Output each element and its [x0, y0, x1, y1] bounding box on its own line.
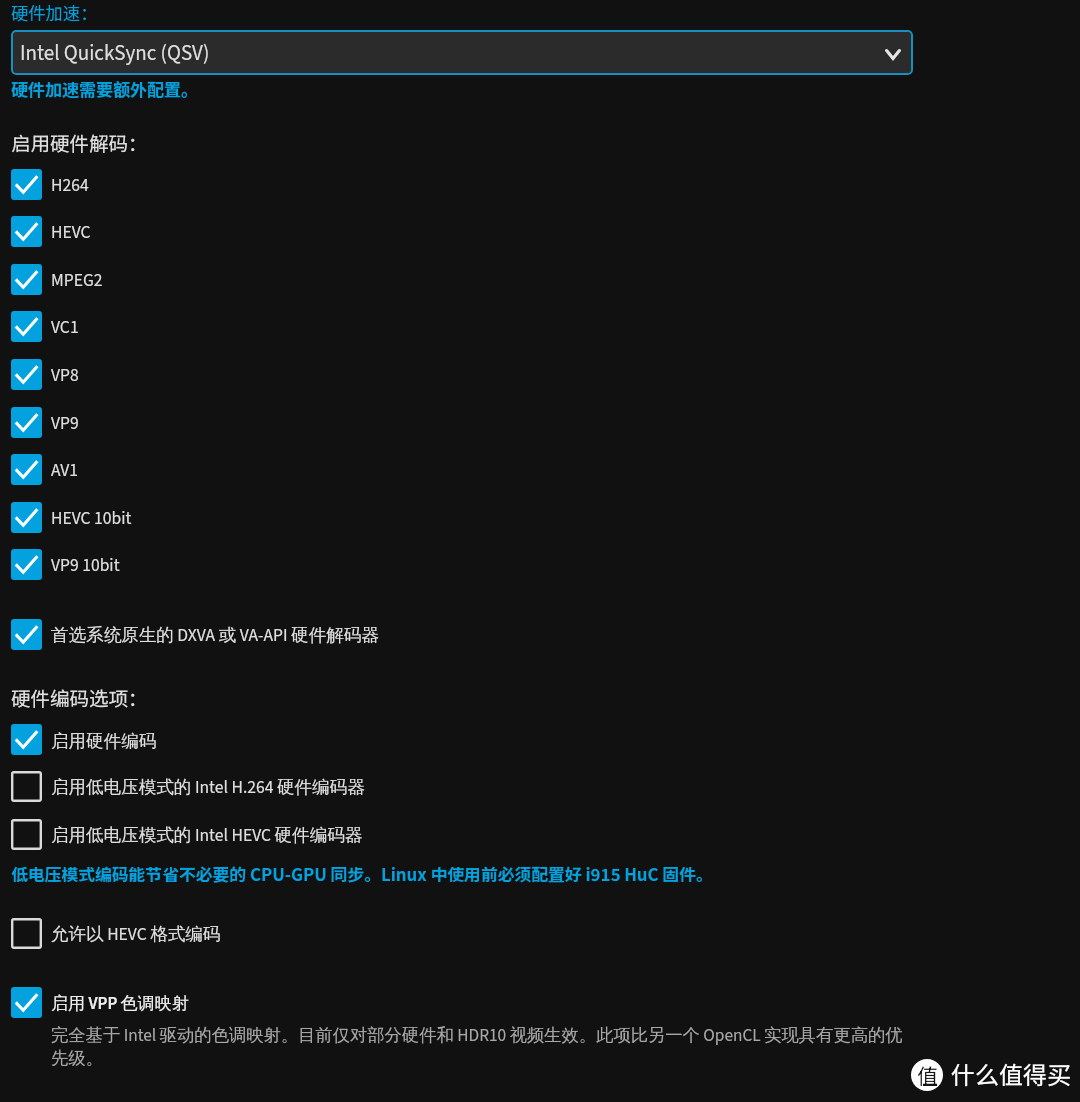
button[interactable]: VC1: [0, 311, 1080, 342]
staticText: VP8: [51, 363, 79, 388]
staticText: 允许以 HEVC 格式编码: [51, 922, 221, 947]
button[interactable]: 允许以 HEVC 格式编码: [0, 918, 1080, 949]
button[interactable]: MPEG2: [0, 264, 1080, 295]
staticText: AV1: [51, 458, 79, 483]
staticText: 完全基于 Intel 驱动的色调映射。目前仅对部分硬件和 HDR10 视频生效。…: [51, 1023, 907, 1069]
button[interactable]: Intel QuickSync (QSV): [11, 30, 913, 75]
button[interactable]: VP9: [0, 407, 1080, 438]
button[interactable]: 启用 VPP 色调映射: [0, 987, 1080, 1018]
staticText: 什么值得买: [951, 1056, 1071, 1091]
button[interactable]: 启用低电压模式的 Intel HEVC 硬件编码器: [0, 819, 1080, 850]
staticText: 值: [917, 1060, 938, 1090]
staticText: 启用硬件解码：: [11, 128, 148, 156]
staticText: 硬件编码选项：: [11, 683, 148, 711]
staticText: 硬件加速：: [11, 0, 98, 25]
staticText: VP9: [51, 411, 79, 436]
staticText: 启用 VPP 色调映射: [51, 992, 189, 1016]
staticText: VC1: [51, 315, 79, 340]
staticText: 硬件加速需要额外配置。: [11, 76, 198, 101]
button[interactable]: 启用硬件编码: [0, 724, 1080, 755]
staticText: 启用低电压模式的 Intel H.264 硬件编码器: [51, 775, 365, 800]
button[interactable]: 启用低电压模式的 Intel H.264 硬件编码器: [0, 771, 1080, 802]
staticText: HEVC: [51, 220, 91, 245]
staticText: 启用低电压模式的 Intel HEVC 硬件编码器: [51, 823, 363, 848]
other: Expand dropdown: [885, 49, 901, 60]
staticText: 低电压模式编码能节省不必要的 CPU-GPU 同步。Linux 中使用前必须配置…: [11, 862, 713, 886]
staticText: VP9 10bit: [51, 553, 120, 578]
button[interactable]: AV1: [0, 454, 1080, 485]
staticText: Intel QuickSync (QSV): [20, 38, 210, 68]
button[interactable]: HEVC: [0, 216, 1080, 247]
staticText: 首选系统原生的 DXVA 或 VA-API 硬件解码器: [51, 623, 379, 648]
button[interactable]: 首选系统原生的 DXVA 或 VA-API 硬件解码器: [0, 619, 1080, 650]
staticText: H264: [51, 173, 89, 198]
button[interactable]: VP8: [0, 359, 1080, 390]
button[interactable]: H264: [0, 169, 1080, 200]
button[interactable]: HEVC 10bit: [0, 502, 1080, 533]
staticText: HEVC 10bit: [51, 506, 132, 531]
button[interactable]: VP9 10bit: [0, 549, 1080, 580]
staticText: MPEG2: [51, 268, 103, 293]
staticText: 启用硬件编码: [51, 730, 157, 752]
